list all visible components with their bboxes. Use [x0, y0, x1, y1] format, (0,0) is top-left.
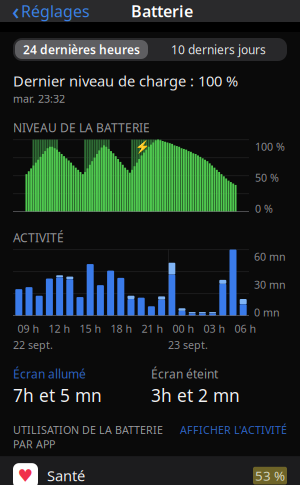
staticText: Dernier niveau de charge : 100 % — [13, 71, 238, 90]
staticText: ♥ — [17, 466, 33, 485]
staticText: 53 % — [255, 467, 285, 484]
staticText: AFFICHER L'ACTIVITÉ — [180, 423, 287, 437]
staticText: 60 mn — [254, 249, 286, 264]
staticText: Santé — [47, 466, 85, 485]
staticText: 24 dernières heures — [23, 41, 140, 57]
staticText: ⚡ — [135, 140, 150, 153]
staticText: NIVEAU DE LA BATTERIE — [13, 120, 150, 135]
staticText: 30 mn — [254, 277, 286, 292]
staticText: 06 h — [234, 321, 256, 336]
staticText: 21 h — [141, 321, 163, 336]
staticText: 3h et 2 mn — [151, 384, 240, 407]
staticText: 0 mn — [254, 305, 280, 319]
staticText: Écran éteint — [151, 366, 218, 382]
button[interactable]: AFFICHER L'ACTIVITÉ — [180, 423, 287, 437]
staticText: 18 h — [110, 321, 132, 336]
staticText: 7h et 5 mn — [13, 384, 102, 407]
staticText: UTILISATION DE LA BATTERIE PAR APP — [13, 423, 163, 451]
button[interactable]: ‹ — [6, 0, 96, 28]
staticText: ACTIVITÉ — [13, 230, 64, 245]
staticText: 10 derniers jours — [171, 41, 266, 57]
staticText: ‹ — [12, 0, 19, 26]
button[interactable]: 24 dernières heures — [13, 38, 150, 61]
staticText: 100 % — [255, 140, 285, 154]
staticText: 23 sept. — [168, 338, 208, 352]
button[interactable]: 10 derniers jours — [150, 38, 287, 61]
button[interactable]: ♥ — [0, 456, 300, 485]
staticText: 12 h — [48, 321, 70, 336]
staticText: 15 h — [79, 321, 101, 336]
staticText: 03 h — [203, 321, 225, 336]
staticText: 00 h — [172, 321, 194, 336]
staticText: Batterie — [131, 0, 193, 22]
staticText: 50 % — [255, 170, 279, 185]
staticText: mar. 23:32 — [13, 91, 65, 106]
staticText: 09 h — [17, 321, 39, 336]
staticText: 0 % — [255, 201, 273, 216]
staticText: Réglages — [21, 0, 90, 22]
button[interactable]: Écran allumé — [13, 366, 86, 382]
staticText: 22 sept. — [13, 338, 53, 352]
staticText: Écran allumé — [13, 366, 86, 382]
